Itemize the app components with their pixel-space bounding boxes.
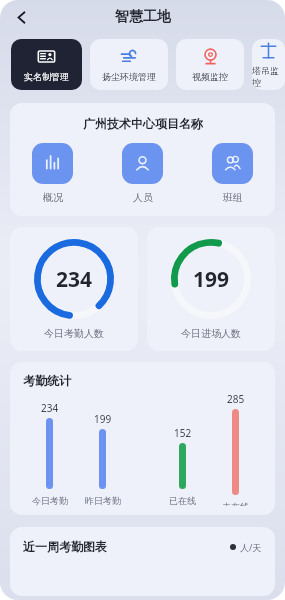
button[interactable]: 塔吊监控	[252, 39, 285, 90]
staticText: 285	[227, 392, 245, 406]
staticText: 扬尘环境管理	[102, 71, 156, 82]
button[interactable]: 扬尘环境管理	[90, 39, 168, 90]
staticText: 未在线	[222, 501, 249, 506]
button[interactable]: 234	[10, 227, 138, 351]
staticText: 今日进场人数	[181, 327, 241, 340]
button[interactable]: 人员	[122, 143, 163, 204]
button[interactable]: 实名制管理	[11, 39, 82, 90]
staticText: 199	[193, 265, 230, 294]
staticText: 塔吊监控	[252, 65, 285, 89]
staticText: 今日考勤	[32, 495, 68, 506]
staticText: 广州技术中心项目名称	[83, 116, 203, 131]
staticText: 概况	[43, 191, 63, 204]
staticText: 234	[56, 265, 93, 294]
staticText: 199	[94, 412, 112, 426]
staticText: 班组	[223, 191, 243, 204]
button[interactable]: 概况	[32, 143, 73, 204]
staticText: 234	[41, 401, 59, 415]
staticText: 昨日考勤	[85, 495, 121, 506]
staticText: 实名制管理	[24, 71, 69, 82]
staticText: 智慧工地	[115, 8, 171, 26]
button[interactable]: 班组	[212, 143, 253, 204]
staticText: 视频监控	[192, 71, 228, 82]
staticText: 152	[174, 426, 192, 440]
staticText: 已在线	[169, 495, 196, 506]
button[interactable]: 视频监控	[176, 39, 244, 90]
button[interactable]: 199	[147, 227, 275, 351]
staticText: 近一周考勤图表	[23, 539, 107, 554]
staticText: 考勤统计	[23, 373, 71, 388]
button[interactable]: Back	[6, 2, 36, 32]
staticText: 人/天	[240, 541, 262, 553]
staticText: 今日考勤人数	[44, 327, 104, 340]
staticText: 人员	[133, 191, 153, 204]
